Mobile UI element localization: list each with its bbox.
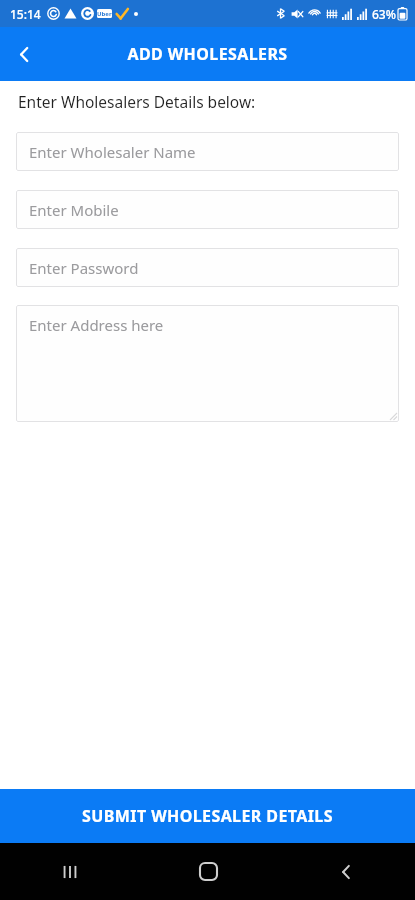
button[interactable]: Enter Wholesaler Name [16,132,399,171]
staticText: 63% [372,6,396,22]
staticText: Enter Password [29,258,139,278]
staticText: Enter Mobile [29,200,119,220]
staticText: 15:14 [10,6,41,22]
staticText: Enter Address here [29,315,164,335]
staticText: ADD WHOLESALERS [127,43,288,65]
button[interactable]: Back [277,843,415,900]
staticText: SUBMIT WHOLESALER DETAILS [82,805,333,827]
staticText: Uber [97,10,112,18]
button[interactable]: Enter Password [16,248,399,287]
button[interactable]: SUBMIT WHOLESALER DETAILS [0,789,415,843]
staticText: Enter Wholesalers Details below: [18,91,256,112]
button[interactable]: Enter Address here [16,305,399,422]
button[interactable]: Enter Mobile [16,190,399,229]
button[interactable]: Back [0,30,48,78]
button[interactable]: Home [139,843,277,900]
staticText: Enter Wholesaler Name [29,142,196,162]
button[interactable]: Recent apps [0,843,139,900]
